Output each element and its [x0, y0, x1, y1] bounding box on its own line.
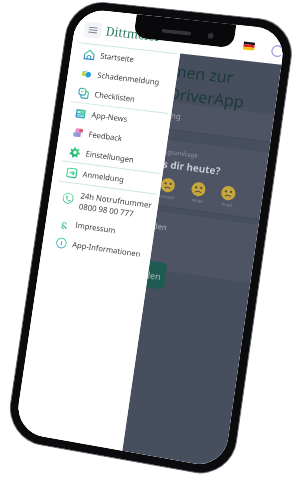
button[interactable]: Dark mode	[269, 43, 284, 59]
button[interactable]: Schadenmeldung	[67, 62, 177, 94]
button[interactable]: Checklisten	[64, 81, 174, 113]
staticText: melden	[129, 266, 162, 282]
staticText: Anmeldung	[82, 169, 125, 185]
button[interactable]: Menu	[83, 21, 103, 39]
staticText: §	[60, 218, 69, 229]
staticText: Stimmungsumfrage	[142, 145, 199, 160]
button[interactable]: Müde	[189, 180, 208, 204]
staticText: Krank	[221, 201, 233, 208]
staticText: Müde	[191, 197, 203, 204]
button[interactable]: Startseite	[70, 42, 180, 74]
button[interactable]: 24h Notrufnummer	[47, 181, 159, 226]
staticText: App-News	[91, 110, 129, 125]
staticText: Wie geht es dir heute?	[111, 150, 221, 178]
staticText: Impressum	[74, 220, 116, 236]
staticText: Schadenmeldung	[97, 70, 161, 88]
staticText: Startseite	[99, 51, 135, 65]
button[interactable]: Anmeldung	[137, 105, 182, 121]
button[interactable]: §	[44, 211, 155, 245]
staticText: Checklisten	[94, 89, 136, 105]
staticText: 24h Notrufnummer	[80, 190, 153, 210]
staticText: App-Informationen	[72, 239, 142, 260]
staticText: Schaden	[135, 217, 169, 232]
staticText: Gestresst	[157, 193, 175, 200]
staticText: Dittmeier DriverApp	[94, 74, 246, 113]
button[interactable]: App-News	[61, 101, 171, 134]
staticText: 0800 98 00 777	[78, 200, 135, 219]
staticText: Einstellungen	[85, 149, 135, 166]
button[interactable]: Krank	[218, 184, 238, 208]
staticText: Willkommen zur	[112, 53, 235, 88]
button[interactable]: Language	[243, 41, 255, 51]
button[interactable]: melden	[123, 257, 168, 290]
button[interactable]: App-Informationen	[42, 230, 152, 265]
staticText: Dittmeier	[105, 23, 162, 45]
button[interactable]: Feedback	[58, 121, 168, 154]
button[interactable]: Gestresst	[157, 176, 178, 200]
staticText: Feedback	[88, 129, 123, 144]
button[interactable]: Einstellungen	[55, 140, 165, 173]
button[interactable]: Anmeldung	[52, 160, 162, 194]
